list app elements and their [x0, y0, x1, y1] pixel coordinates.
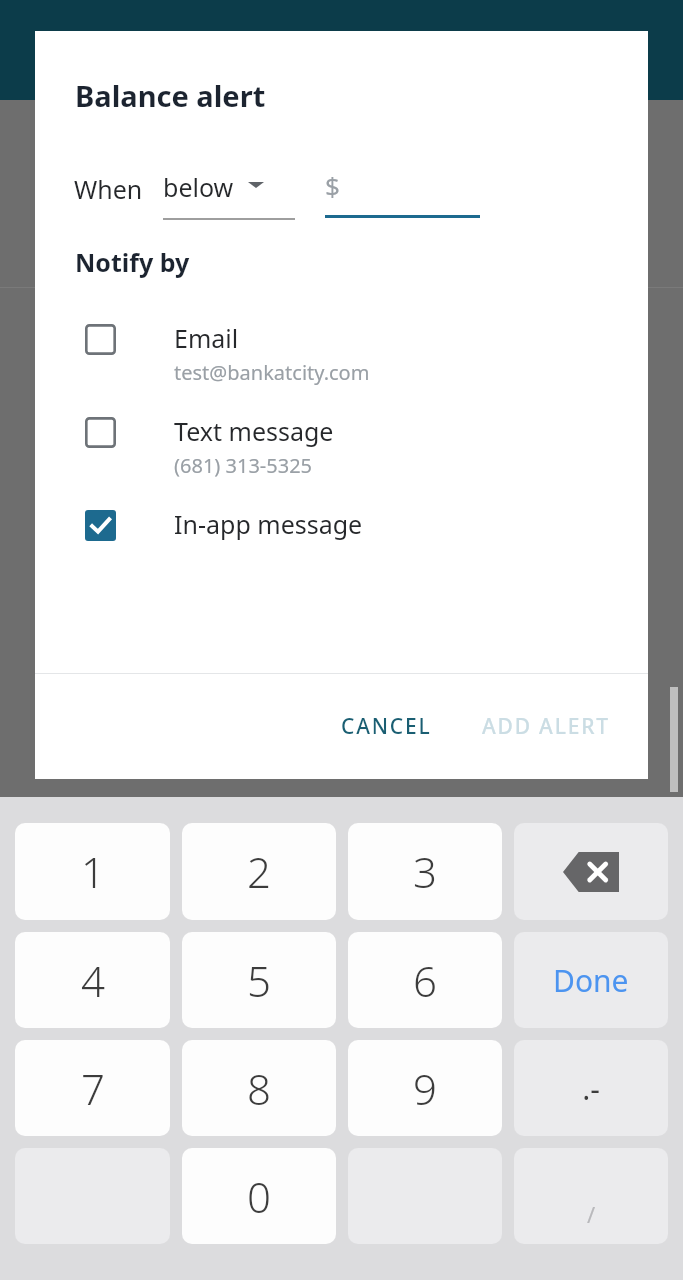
staticText: 3: [413, 843, 437, 900]
button[interactable]: 2: [182, 823, 336, 920]
staticText: 5: [247, 952, 271, 1009]
staticText: ADD ALERT: [482, 712, 610, 741]
staticText: Alerts for: [128, 64, 226, 94]
button[interactable]: ADD ALERT: [466, 700, 626, 753]
staticText: test@bankatcity.com: [174, 359, 370, 386]
button[interactable]: 3: [348, 823, 502, 920]
staticText: When: [74, 172, 143, 206]
button[interactable]: 1: [15, 823, 170, 920]
staticText: below: [163, 170, 234, 204]
button[interactable]: 0: [182, 1148, 336, 1244]
staticText: $: [325, 168, 340, 203]
staticText: 8: [247, 1060, 271, 1117]
button[interactable]: 9: [348, 1040, 502, 1136]
staticText: (681) 313-5325: [174, 452, 313, 479]
staticText: 1: [81, 843, 105, 900]
staticText: .-: [582, 1068, 600, 1109]
button[interactable]: 5: [182, 932, 336, 1028]
staticText: Notify by: [75, 245, 190, 279]
button[interactable]: Backspace: [514, 823, 668, 920]
staticText: Balance alert: [75, 76, 266, 115]
button[interactable]: Done: [514, 932, 668, 1028]
button[interactable]: 7: [15, 1040, 170, 1136]
button[interactable]: Email: [35, 321, 648, 386]
button[interactable]: 8: [182, 1040, 336, 1136]
staticText: 6: [413, 952, 437, 1009]
staticText: 9: [413, 1060, 437, 1117]
button[interactable]: .-: [514, 1040, 668, 1136]
staticText: /: [587, 1199, 596, 1229]
button[interactable]: In-app message: [35, 507, 648, 543]
staticText: 2: [247, 843, 271, 900]
staticText: Text message: [174, 414, 334, 448]
button[interactable]: below: [163, 162, 295, 220]
staticText: Email: [174, 321, 239, 355]
staticText: 0: [247, 1168, 271, 1225]
staticText: 4: [81, 952, 105, 1009]
button[interactable]: Text message: [35, 414, 648, 479]
staticText: 7: [81, 1060, 105, 1117]
button[interactable]: CANCEL: [325, 700, 448, 753]
button[interactable]: 6: [348, 932, 502, 1028]
button[interactable]: $: [325, 162, 480, 218]
button[interactable]: 4: [15, 932, 170, 1028]
staticText: Done: [553, 960, 629, 1001]
staticText: CANCEL: [341, 712, 432, 741]
staticText: In-app message: [174, 507, 363, 541]
